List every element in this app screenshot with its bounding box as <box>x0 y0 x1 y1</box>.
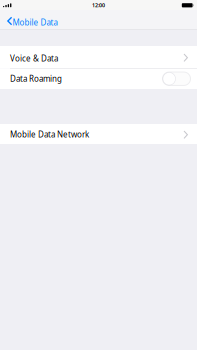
staticText: Data Roaming <box>10 73 62 84</box>
button[interactable]: Data Roaming <box>0 68 197 89</box>
button[interactable]: Mobile Data Network <box>0 124 197 144</box>
button[interactable]: Back to Mobile Data <box>0 10 61 29</box>
staticText: 12:00 <box>92 2 105 9</box>
staticText: Mobile Data Network <box>10 129 89 140</box>
staticText: Voice & Data <box>10 53 58 64</box>
staticText: Mobile Data <box>12 17 57 28</box>
button[interactable]: Voice & Data <box>0 46 197 68</box>
